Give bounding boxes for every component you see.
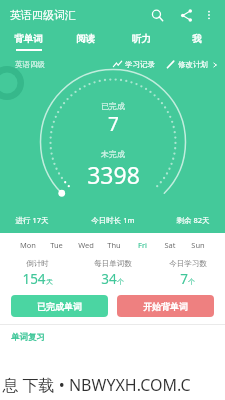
staticText: 背单词: [14, 33, 43, 45]
staticText: Thu: [107, 240, 121, 250]
staticText: 开始背单词: [143, 301, 188, 312]
staticText: Tue: [50, 240, 63, 250]
staticText: 息 下载 • NBWYXH.COM.C: [2, 374, 191, 396]
staticText: 7: [180, 270, 188, 288]
button[interactable]: Search: [146, 4, 168, 26]
staticText: 倒计时: [26, 259, 49, 268]
staticText: 剩余 82天: [176, 215, 210, 225]
staticText: 154: [22, 270, 46, 288]
button[interactable]: Share: [175, 4, 197, 26]
button[interactable]: More options: [200, 6, 218, 24]
button[interactable]: 修改计划: [166, 60, 218, 69]
staticText: Fri: [138, 240, 147, 250]
staticText: 3398: [87, 159, 140, 190]
staticText: 34: [101, 270, 117, 288]
button[interactable]: 学习记录: [113, 60, 155, 69]
button[interactable]: 已完成单词: [11, 295, 108, 317]
staticText: 每日单词数: [94, 259, 132, 268]
button[interactable]: 阅读: [57, 29, 113, 54]
button[interactable]: 开始背单词: [117, 295, 214, 317]
staticText: 今日时长 1m: [91, 215, 135, 225]
staticText: 学习记录: [125, 60, 155, 69]
staticText: 进行 17天: [15, 215, 49, 225]
staticText: 个: [117, 277, 124, 286]
button[interactable]: 背单词: [0, 29, 57, 54]
staticText: 7: [108, 111, 119, 137]
staticText: Sun: [191, 240, 205, 250]
staticText: 阅读: [76, 33, 95, 45]
button[interactable]: 我: [169, 29, 225, 54]
staticText: 天: [46, 277, 53, 286]
staticText: 我: [192, 33, 202, 45]
staticText: 英语四级: [15, 60, 45, 69]
staticText: Mon: [20, 240, 36, 250]
staticText: 单词复习: [11, 332, 45, 343]
staticText: Sat: [164, 240, 176, 250]
staticText: 修改计划: [178, 60, 208, 69]
staticText: 英语四级词汇: [10, 8, 76, 22]
button[interactable]: 听力: [113, 29, 169, 54]
staticText: 未完成: [101, 149, 125, 159]
staticText: 已完成单词: [37, 301, 82, 312]
staticText: 已完成: [101, 101, 125, 111]
staticText: Wed: [78, 240, 94, 250]
staticText: 今日学习数: [169, 259, 207, 268]
staticText: 听力: [132, 33, 151, 45]
staticText: 个: [188, 277, 195, 286]
